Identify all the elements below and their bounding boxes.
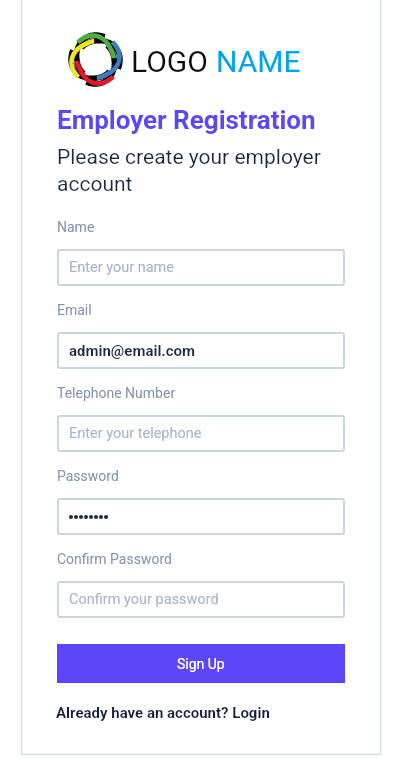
staticText: Confirm Password: [57, 551, 172, 567]
staticText: NAME: [216, 44, 301, 79]
staticText: Confirm your password: [69, 591, 219, 608]
staticText: Password: [57, 468, 119, 484]
button[interactable]: Enter your telephone: [57, 415, 345, 452]
staticText: Enter your telephone: [69, 425, 202, 442]
staticText: Already have an account? Login: [56, 704, 270, 722]
button[interactable]: Enter your name: [57, 249, 345, 286]
staticText: Telephone Number: [57, 385, 176, 401]
staticText: admin@email.com: [69, 342, 195, 360]
staticText: Employer Registration: [57, 105, 316, 135]
button[interactable]: Confirm your password: [57, 581, 345, 618]
staticText: Enter your name: [69, 259, 175, 276]
button[interactable]: [57, 498, 345, 535]
button[interactable]: Already have an account? Login: [56, 704, 270, 722]
button[interactable]: admin@email.com: [57, 332, 345, 369]
staticText: LOGO: [131, 44, 216, 79]
button[interactable]: Sign Up: [57, 644, 345, 683]
staticText: Sign Up: [177, 656, 225, 672]
staticText: Email: [57, 302, 92, 318]
staticText: Please create your employer account: [57, 145, 347, 196]
staticText: Name: [57, 219, 95, 235]
